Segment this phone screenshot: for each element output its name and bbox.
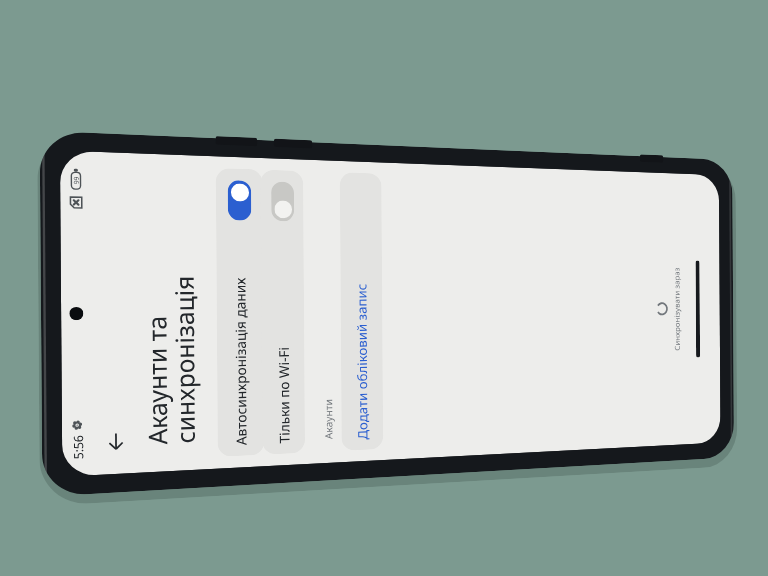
staticText: Акаунти: [321, 398, 335, 440]
button[interactable]: Back: [97, 424, 134, 461]
button[interactable]: Синхронізувати зараз: [654, 173, 683, 446]
staticText: Автосинхронізація даних: [230, 277, 251, 446]
staticText: 5:56: [69, 435, 87, 460]
staticText: Додати обліковий запис: [352, 283, 371, 440]
button[interactable]: Автосинхронізація даних: [216, 168, 265, 457]
staticText: Синхронізувати зараз: [672, 267, 682, 351]
staticText: Тільки по Wi-Fi: [274, 346, 294, 444]
staticText: 99: [72, 176, 81, 184]
button[interactable]: Додати обліковий запис: [340, 172, 383, 451]
staticText: Акаунти та синхронізація: [138, 275, 202, 446]
button[interactable]: Тільки по Wi-Fi: [260, 169, 305, 455]
